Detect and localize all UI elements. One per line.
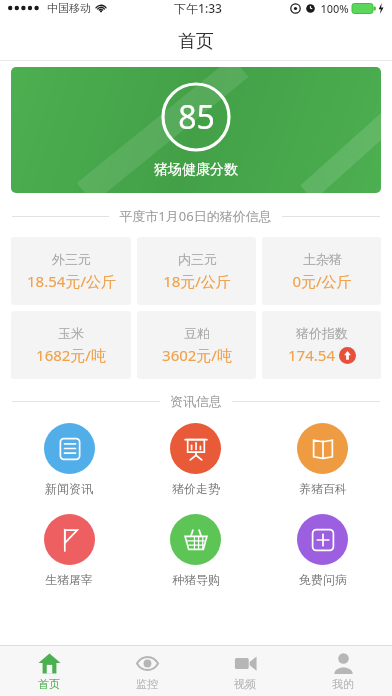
button[interactable]: 玉米 <box>11 311 131 379</box>
staticText: 豆粕 <box>184 325 210 341</box>
staticText: 猪价指数 <box>296 325 348 341</box>
staticText: 首页 <box>38 677 60 691</box>
staticText: 资讯信息 <box>170 393 222 409</box>
button[interactable]: 首页 <box>0 646 98 696</box>
button[interactable]: 外三元 <box>11 237 131 305</box>
staticText: 100% <box>320 1 349 16</box>
button[interactable]: 养猪百科 <box>259 419 386 500</box>
button[interactable]: 监控 <box>98 646 196 696</box>
staticText: 土杂猪 <box>303 251 342 267</box>
staticText: 174.54 <box>288 345 335 365</box>
staticText: 生猪屠宰 <box>45 572 93 587</box>
staticText: 内三元 <box>178 251 217 267</box>
button[interactable]: 我的 <box>294 646 392 696</box>
button[interactable]: 土杂猪 <box>262 237 381 305</box>
button[interactable]: 新闻资讯 <box>6 419 132 500</box>
button[interactable]: 内三元 <box>137 237 256 305</box>
staticText: 平度市1月06日的猪价信息 <box>119 207 272 225</box>
staticText: 新闻资讯 <box>45 481 93 496</box>
staticText: 18.54元/公斤 <box>27 271 116 291</box>
button[interactable]: 85 <box>11 67 381 193</box>
staticText: 监控 <box>136 677 158 691</box>
staticText: 中国移动 <box>47 1 91 15</box>
staticText: 3602元/吨 <box>162 345 232 365</box>
staticText: 养猪百科 <box>299 481 347 496</box>
staticText: 免费问病 <box>299 572 347 587</box>
staticText: 种猪导购 <box>172 572 220 587</box>
button[interactable]: 猪价走势 <box>132 419 259 500</box>
staticText: 18元/公斤 <box>163 271 231 291</box>
button[interactable]: 豆粕 <box>137 311 256 379</box>
button[interactable]: 猪价指数 <box>262 311 381 379</box>
staticText: 下午1:33 <box>174 0 222 16</box>
staticText: 0元/公斤 <box>292 271 352 291</box>
button[interactable]: 免费问病 <box>259 510 386 591</box>
staticText: 猪价走势 <box>172 481 220 496</box>
staticText: 玉米 <box>58 325 84 341</box>
staticText: 外三元 <box>52 251 91 267</box>
staticText: 1682元/吨 <box>36 345 106 365</box>
button[interactable]: 种猪导购 <box>132 510 259 591</box>
staticText: 视频 <box>234 677 256 691</box>
staticText: 猪场健康分数 <box>154 161 238 179</box>
button[interactable]: 视频 <box>196 646 294 696</box>
staticText: 首页 <box>178 30 214 53</box>
button[interactable]: 生猪屠宰 <box>6 510 132 591</box>
staticText: 我的 <box>332 677 354 691</box>
staticText: 85 <box>178 95 215 139</box>
